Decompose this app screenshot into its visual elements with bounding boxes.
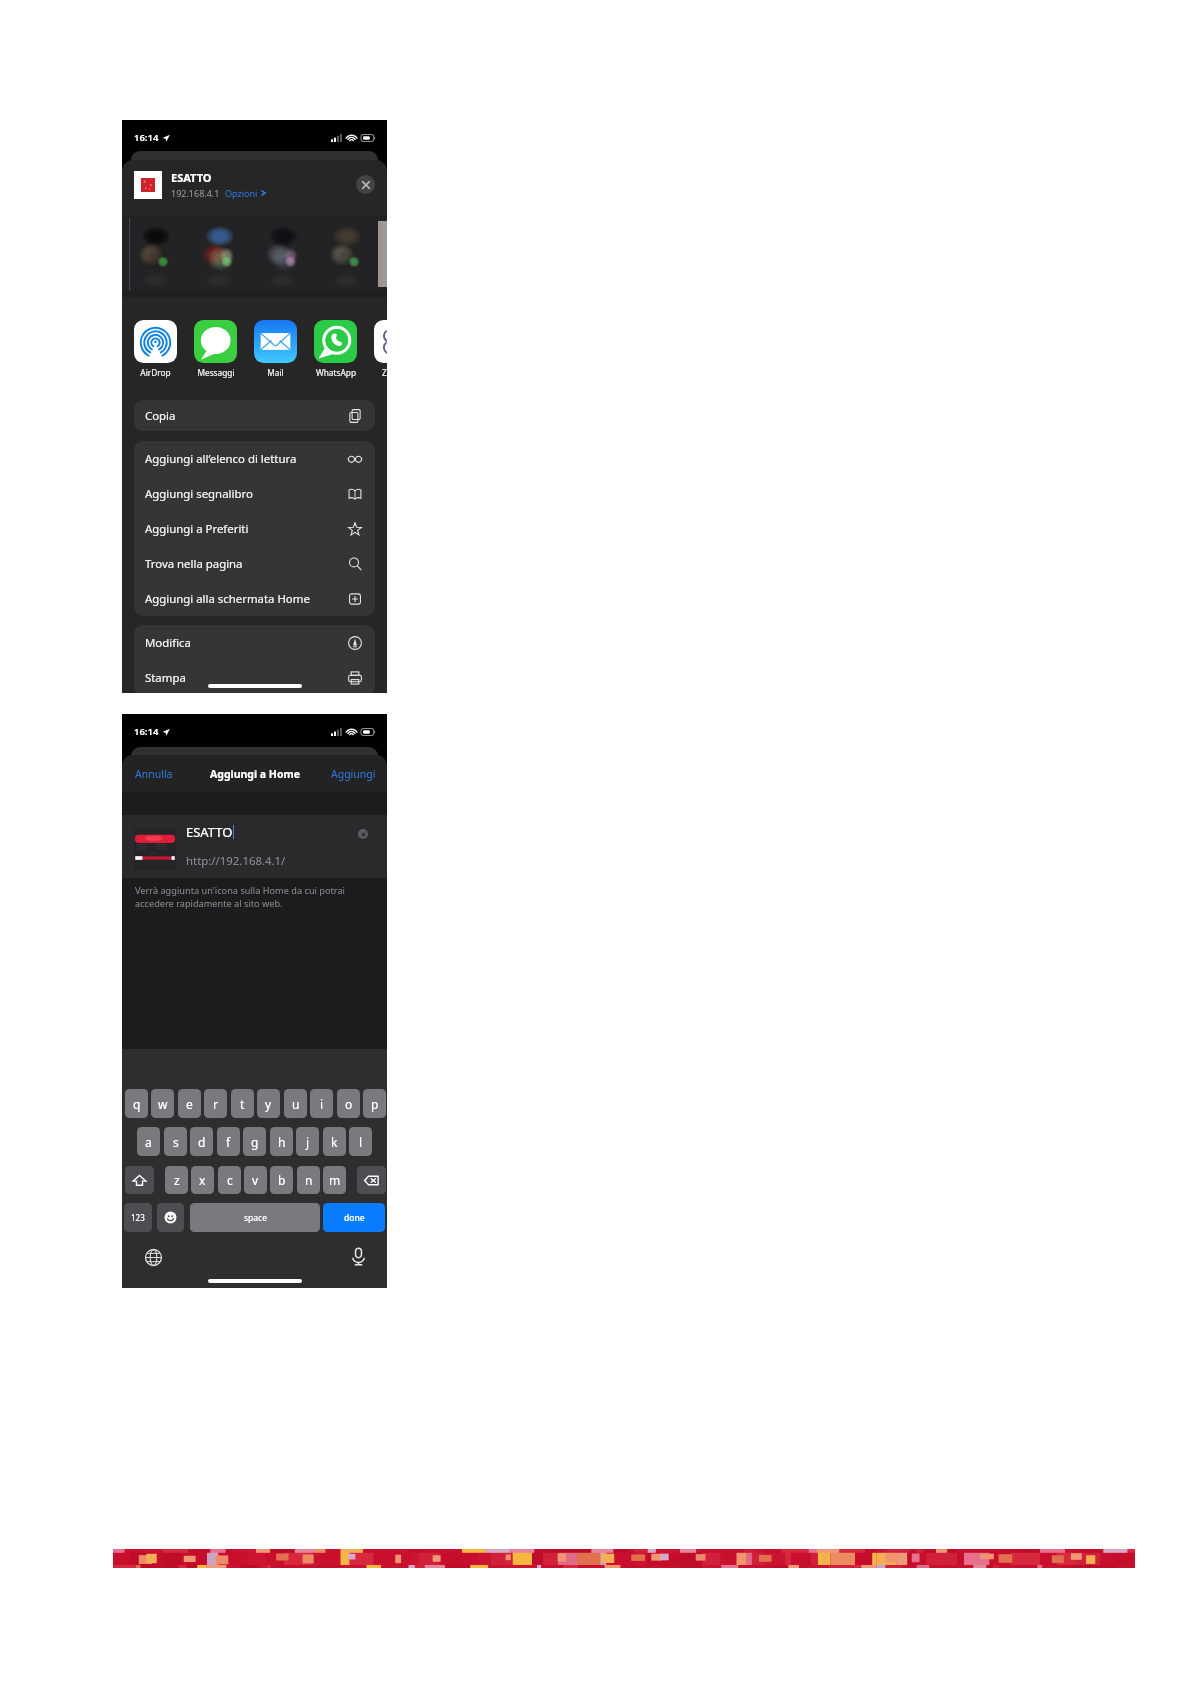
button[interactable]: Mail	[254, 320, 297, 378]
button[interactable]: WhatsApp	[314, 320, 357, 378]
button[interactable]: b	[270, 1166, 293, 1194]
button[interactable]: ESATTO	[122, 167, 387, 202]
staticText: u	[292, 1096, 300, 1112]
staticText: Messaggi	[197, 367, 235, 378]
staticText: Trova nella pagina	[145, 556, 243, 572]
staticText: s	[173, 1134, 179, 1150]
button[interactable]: g	[243, 1127, 266, 1156]
button[interactable]: r	[204, 1089, 227, 1118]
staticText: Zo	[382, 367, 387, 378]
button[interactable]: Annulla	[135, 767, 173, 781]
staticText: t	[240, 1096, 245, 1112]
staticText: Aggiungi all’elenco di lettura	[145, 451, 297, 467]
staticText: http://192.168.4.1/	[186, 853, 286, 869]
staticText: n	[305, 1172, 313, 1188]
staticText: w	[158, 1096, 168, 1112]
staticText: 16:14	[134, 131, 159, 144]
staticText: l	[359, 1134, 363, 1150]
staticText: j	[306, 1134, 310, 1150]
button[interactable]: Zo	[374, 320, 387, 378]
button[interactable]: Stampa	[134, 660, 375, 693]
staticText: h	[278, 1134, 286, 1150]
staticText: c	[227, 1172, 233, 1188]
button[interactable]: i	[310, 1089, 333, 1118]
button[interactable]: Aggiungi all’elenco di lettura	[134, 441, 375, 476]
button[interactable]: p	[363, 1089, 386, 1118]
staticText: 192.168.4.1	[171, 187, 220, 199]
staticText: v	[252, 1172, 259, 1188]
button[interactable]: Aggiungi segnalibro	[134, 476, 375, 511]
staticText: Aggiungi a Preferiti	[145, 521, 249, 537]
button[interactable]: Aggiungi alla schermata Home	[134, 581, 375, 616]
button[interactable]: w	[151, 1089, 174, 1118]
button[interactable]: l	[349, 1127, 372, 1156]
button[interactable]: Trova nella pagina	[134, 546, 375, 581]
button[interactable]: Dettatura	[349, 1247, 368, 1266]
staticText: 16:14	[134, 725, 159, 738]
button[interactable]: c	[218, 1166, 241, 1194]
button[interactable]: s	[164, 1127, 187, 1156]
button[interactable]: Chiudi	[356, 175, 375, 194]
button[interactable]: Aggiungi	[331, 767, 376, 781]
button[interactable]: AirDrop	[134, 320, 177, 378]
staticText: 123	[131, 1212, 145, 1223]
button[interactable]: n	[297, 1166, 320, 1194]
staticText: Stampa	[145, 670, 186, 686]
button[interactable]: q	[125, 1089, 148, 1118]
staticText: ESATTO	[171, 170, 212, 185]
button[interactable]: f	[217, 1127, 240, 1156]
staticText: i	[320, 1096, 324, 1112]
button[interactable]: Modifica	[134, 625, 375, 660]
button[interactable]: o	[337, 1089, 360, 1118]
button[interactable]: 123	[124, 1203, 152, 1232]
button[interactable]: e	[178, 1089, 201, 1118]
staticText: done	[344, 1212, 365, 1224]
staticText: e	[186, 1096, 193, 1112]
button[interactable]: Cambia lingua	[144, 1248, 163, 1267]
button[interactable]: Copia	[134, 400, 375, 431]
staticText: Aggiungi segnalibro	[145, 486, 253, 502]
staticText: ESATTO	[186, 823, 233, 841]
staticText: y	[265, 1096, 272, 1112]
staticText: r	[213, 1096, 218, 1112]
staticText: k	[331, 1134, 338, 1150]
button[interactable]: d	[190, 1127, 213, 1156]
button[interactable]: k	[323, 1127, 346, 1156]
staticText: Opzioni	[225, 187, 258, 199]
staticText: Mail	[267, 367, 284, 378]
staticText: Aggiungi a Home	[210, 767, 300, 781]
button[interactable]: space	[190, 1203, 320, 1232]
staticText: b	[278, 1172, 286, 1188]
button[interactable]: y	[257, 1089, 280, 1118]
staticText: Aggiungi alla schermata Home	[145, 591, 310, 607]
staticText: x	[199, 1172, 206, 1188]
button[interactable]: j	[296, 1127, 319, 1156]
staticText: Copia	[145, 408, 176, 424]
button[interactable]: Maiuscole	[125, 1166, 154, 1194]
staticText: g	[251, 1134, 259, 1150]
button[interactable]: v	[244, 1166, 267, 1194]
staticText: d	[198, 1134, 206, 1150]
button[interactable]: Messaggi	[194, 320, 237, 378]
button[interactable]: x	[191, 1166, 214, 1194]
button[interactable]: Cancella	[357, 1166, 386, 1194]
staticText: a	[145, 1134, 152, 1150]
staticText: f	[226, 1134, 231, 1150]
staticText: Verrà aggiunta un'icona sulla Home da cu…	[135, 884, 345, 910]
button[interactable]: t	[231, 1089, 254, 1118]
button[interactable]: u	[284, 1089, 307, 1118]
staticText: Modifica	[145, 635, 191, 651]
staticText: q	[133, 1096, 141, 1112]
staticText: m	[329, 1172, 341, 1188]
button[interactable]: Emoji	[157, 1203, 184, 1232]
button[interactable]: Opzioni	[225, 187, 266, 199]
button[interactable]: z	[165, 1166, 188, 1194]
button[interactable]: Cancella	[358, 829, 368, 839]
button[interactable]: h	[270, 1127, 293, 1156]
button[interactable]: done	[323, 1203, 385, 1232]
button[interactable]: m	[323, 1166, 346, 1194]
staticText: AirDrop	[140, 367, 171, 378]
staticText: space	[244, 1212, 267, 1224]
button[interactable]: Aggiungi a Preferiti	[134, 511, 375, 546]
button[interactable]: a	[137, 1127, 160, 1156]
